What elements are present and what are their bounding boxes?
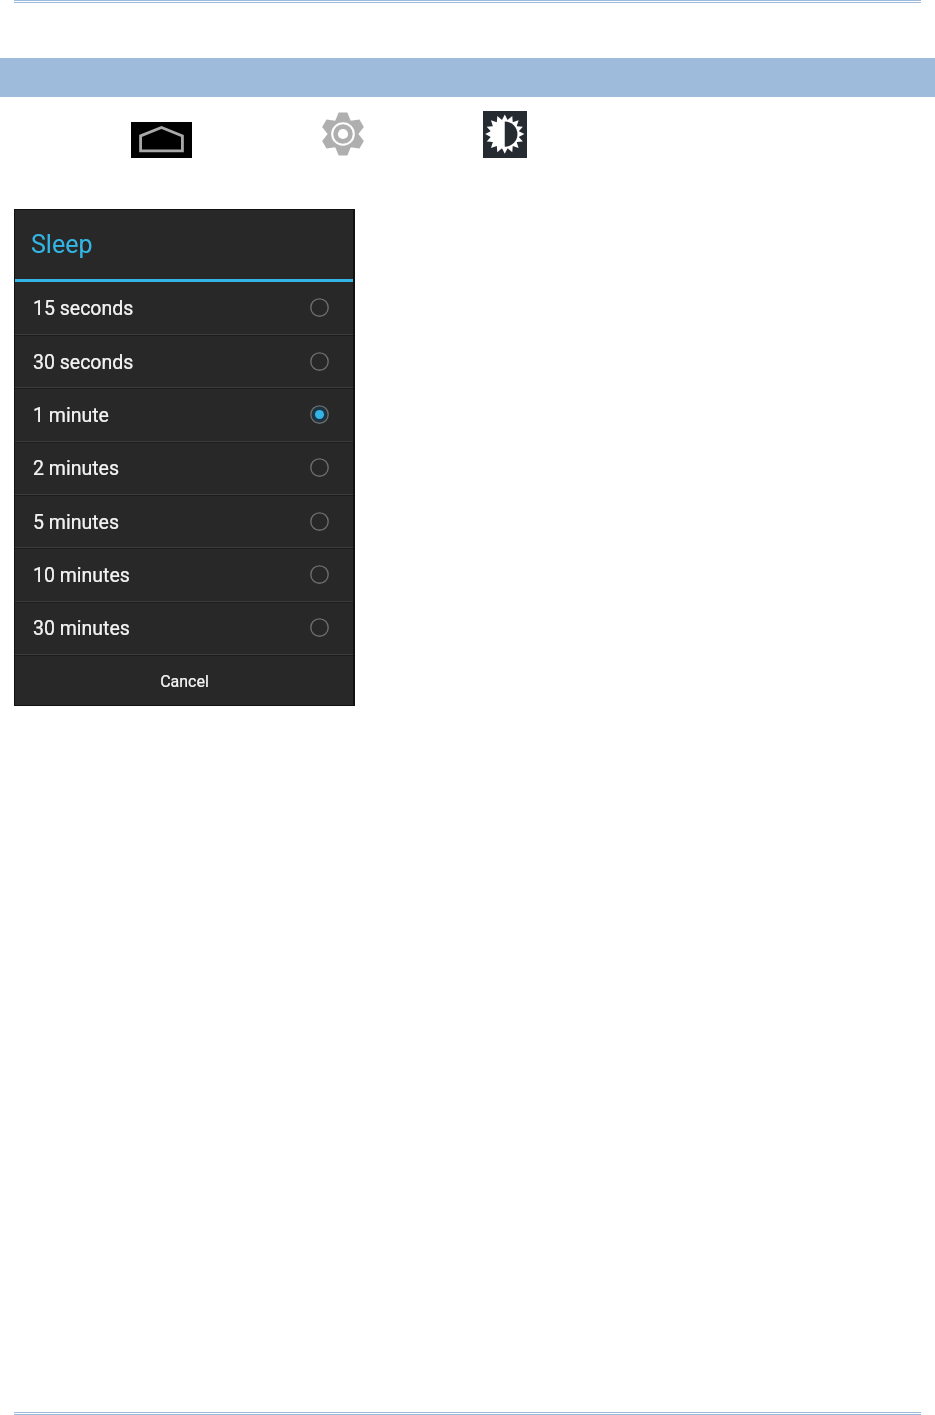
staticText: 30 minutes bbox=[33, 617, 130, 640]
button[interactable]: 5 minutes bbox=[15, 495, 353, 548]
button[interactable]: 30 minutes bbox=[15, 601, 353, 654]
button[interactable]: Cancel bbox=[15, 655, 353, 705]
button[interactable]: 1 minute bbox=[15, 388, 353, 441]
staticText: Sleep bbox=[31, 230, 93, 259]
button[interactable]: Settings bbox=[321, 112, 365, 156]
button[interactable]: 2 minutes bbox=[15, 441, 353, 494]
staticText: 1 minute bbox=[33, 404, 109, 427]
button[interactable]: 30 seconds bbox=[15, 335, 353, 388]
staticText: 5 minutes bbox=[33, 511, 119, 534]
staticText: 30 seconds bbox=[33, 351, 134, 374]
button[interactable]: Brightness bbox=[483, 111, 527, 158]
staticText: 15 seconds bbox=[33, 297, 134, 320]
button[interactable]: 10 minutes bbox=[15, 548, 353, 601]
staticText: Cancel bbox=[160, 672, 209, 691]
button[interactable]: Home bbox=[131, 122, 192, 158]
button[interactable]: 15 seconds bbox=[15, 281, 353, 334]
staticText: 2 minutes bbox=[33, 457, 119, 480]
staticText: 10 minutes bbox=[33, 564, 130, 587]
